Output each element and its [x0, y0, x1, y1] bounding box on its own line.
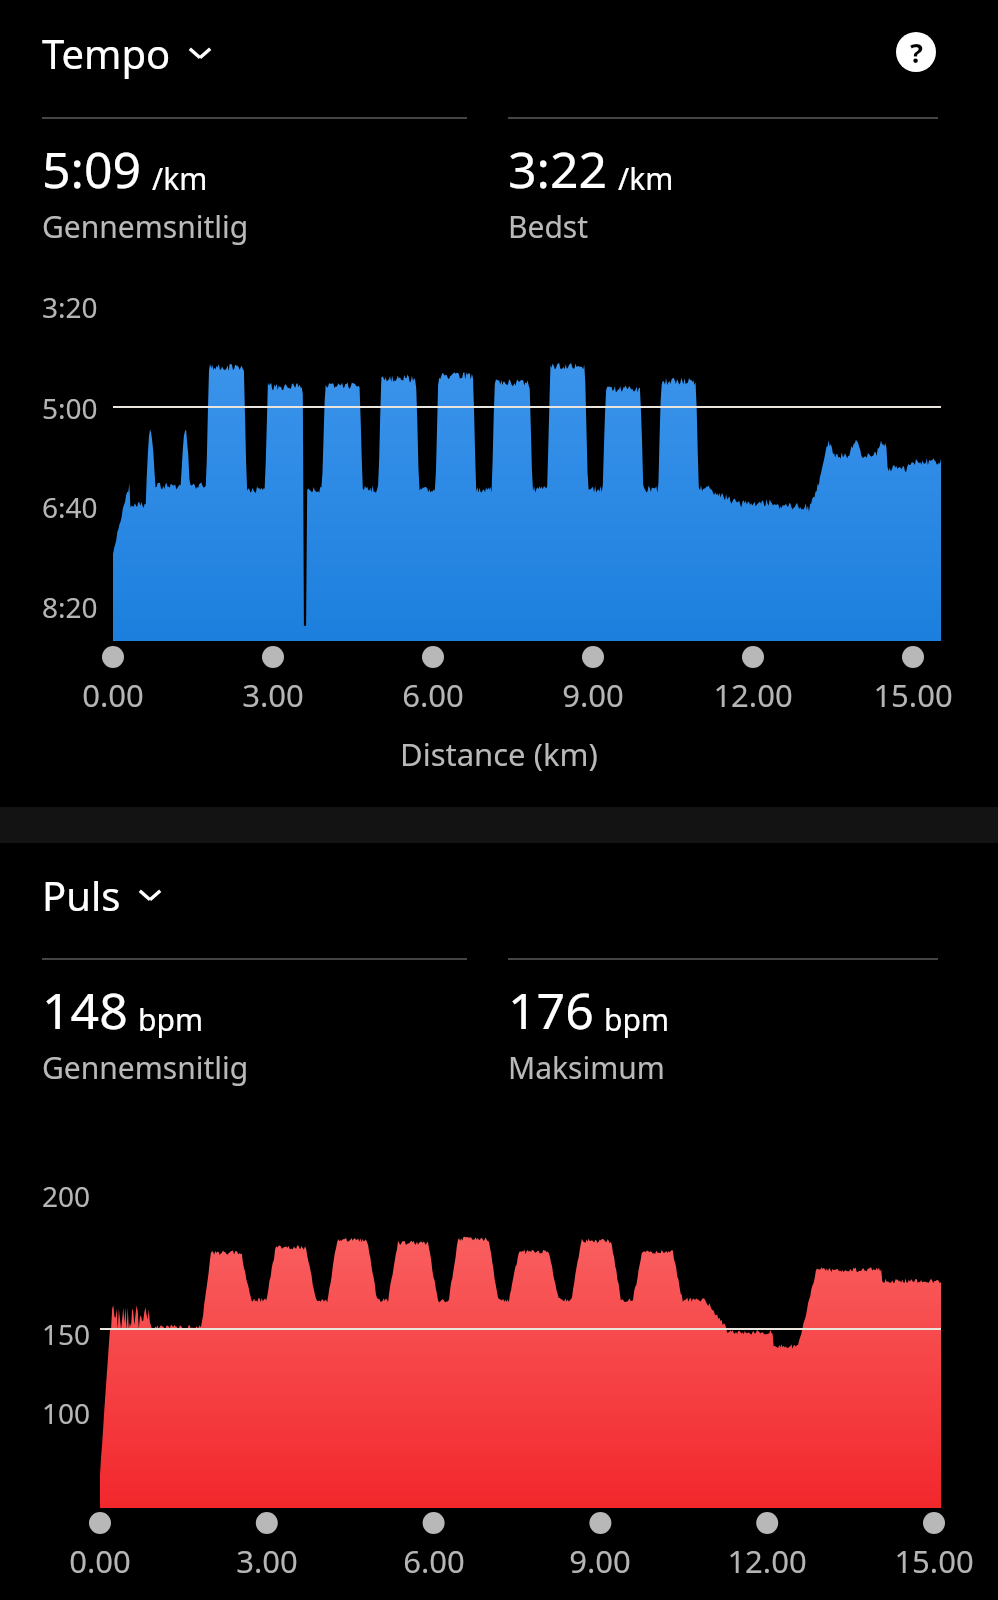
staticText: bpm — [604, 999, 669, 1040]
staticText: 15.00 — [894, 1540, 974, 1582]
staticText: 6.00 — [402, 674, 464, 716]
staticText: ? — [910, 34, 923, 71]
staticText: /km — [618, 158, 674, 199]
staticText: 6.00 — [403, 1540, 465, 1582]
staticText: 12.00 — [727, 1540, 807, 1582]
staticText: 3:20 — [42, 288, 98, 326]
staticText: /km — [152, 158, 208, 199]
staticText: 176 — [508, 976, 594, 1044]
staticText: 150 — [42, 1315, 91, 1353]
staticText: 9.00 — [569, 1540, 631, 1582]
staticText: 5:09 — [42, 135, 142, 203]
staticText: Puls — [42, 868, 121, 922]
staticText: 5:00 — [42, 389, 98, 427]
staticText: 15.00 — [873, 674, 953, 716]
staticText: 6:40 — [42, 488, 98, 526]
staticText: 3.00 — [242, 674, 304, 716]
staticText: Distance (km) — [400, 733, 598, 775]
button[interactable]: 176 — [508, 958, 938, 1088]
staticText: 3.00 — [236, 1540, 298, 1582]
button[interactable]: Puls — [42, 868, 165, 922]
staticText: 0.00 — [69, 1540, 131, 1582]
staticText: 9.00 — [562, 674, 624, 716]
button[interactable]: Tempo — [42, 26, 215, 80]
staticText: Gennemsnitlig — [42, 1047, 249, 1088]
button[interactable]: 148 — [42, 958, 467, 1088]
staticText: Bedst — [508, 206, 589, 247]
staticText: 100 — [42, 1394, 91, 1432]
staticText: Gennemsnitlig — [42, 206, 249, 247]
staticText: Maksimum — [508, 1047, 665, 1088]
staticText: 12.00 — [713, 674, 793, 716]
staticText: 148 — [42, 976, 128, 1044]
button[interactable]: Help — [896, 32, 936, 72]
staticText: 200 — [42, 1177, 91, 1215]
staticText: Tempo — [42, 26, 171, 80]
button[interactable]: 3:22 — [508, 117, 938, 247]
staticText: bpm — [138, 999, 203, 1040]
staticText: 3:22 — [508, 135, 608, 203]
staticText: 0.00 — [82, 674, 144, 716]
button[interactable]: 5:09 — [42, 117, 467, 247]
staticText: 8:20 — [42, 588, 98, 626]
